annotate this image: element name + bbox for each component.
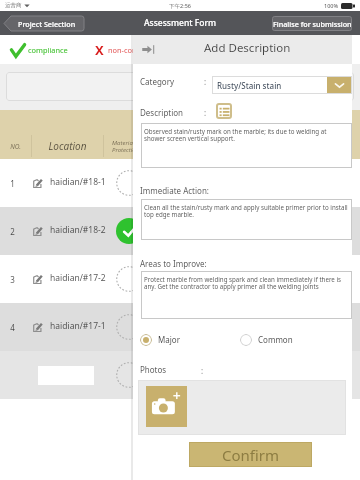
button[interactable]: Finalise for submission xyxy=(272,16,352,31)
staticText: Finalise for submission xyxy=(273,19,352,29)
staticText: Common xyxy=(258,334,293,345)
staticText: compliance xyxy=(28,45,68,55)
button[interactable]: 4 xyxy=(0,303,360,351)
staticText: X xyxy=(95,41,104,59)
staticText: : xyxy=(204,76,207,87)
staticText: 4 xyxy=(0,322,25,333)
button[interactable]: Observed stain/rusty mark on the marble;… xyxy=(141,123,352,168)
staticText: : xyxy=(201,365,204,376)
staticText: Rusty/Stain stain xyxy=(217,80,282,91)
button[interactable]: Choose template xyxy=(216,103,232,119)
button[interactable]: 2 xyxy=(0,207,360,255)
staticText: Location xyxy=(32,139,103,153)
button[interactable]: Collapse panel xyxy=(142,45,155,54)
button[interactable]: Major xyxy=(140,333,180,346)
button[interactable]: X xyxy=(95,40,164,60)
staticText: haidian/#17-1 xyxy=(50,320,106,332)
staticText: Material Protection xyxy=(112,139,164,154)
staticText: Observed stain/rusty mark on the marble;… xyxy=(144,127,348,143)
staticText: Photos xyxy=(140,364,167,375)
staticText: 下午2:56 xyxy=(169,2,191,10)
staticText: Add Description xyxy=(204,40,291,56)
staticText: Major xyxy=(158,334,180,345)
button[interactable]: Protect marble from welding spark and cl… xyxy=(141,271,352,319)
button[interactable]: 1 xyxy=(0,159,360,207)
staticText: 运营商 xyxy=(5,2,22,9)
staticText: non-compliance xyxy=(108,45,164,55)
staticText: 1 xyxy=(0,178,25,189)
staticText: Assessment Form xyxy=(144,17,217,29)
button[interactable]: Add photo xyxy=(146,386,187,427)
button[interactable]: Clean all the stain/rusty mark and apply… xyxy=(141,199,352,240)
staticText: haidian/#17-2 xyxy=(50,272,106,284)
button[interactable] xyxy=(6,72,354,101)
staticText: haidian/#18-2 xyxy=(50,224,106,236)
button[interactable]: Project Selection xyxy=(4,16,84,31)
staticText: Category xyxy=(140,76,175,87)
staticText: Immediate Action: xyxy=(140,185,209,196)
staticText: Protect marble from welding spark and cl… xyxy=(144,275,348,291)
button[interactable]: Confirm xyxy=(189,442,312,467)
staticText: haidian/#18-1 xyxy=(50,176,106,188)
staticText: 2 xyxy=(0,226,25,237)
staticText: NO. xyxy=(0,142,31,151)
button[interactable]: Common xyxy=(240,333,293,346)
staticText: : xyxy=(204,107,207,118)
staticText: Areas to Improve: xyxy=(140,258,207,269)
staticText: 100% xyxy=(324,2,339,9)
staticText: Description xyxy=(140,107,184,118)
staticText: 3 xyxy=(0,274,25,285)
button[interactable]: compliance xyxy=(11,40,68,60)
button[interactable]: Rusty/Stain stain xyxy=(212,76,352,94)
staticText: Clean all the stain/rusty mark and apply… xyxy=(144,203,348,219)
staticText: Confirm xyxy=(222,445,280,465)
button[interactable]: 3 xyxy=(0,255,360,303)
staticText: Project Selection xyxy=(18,19,76,29)
